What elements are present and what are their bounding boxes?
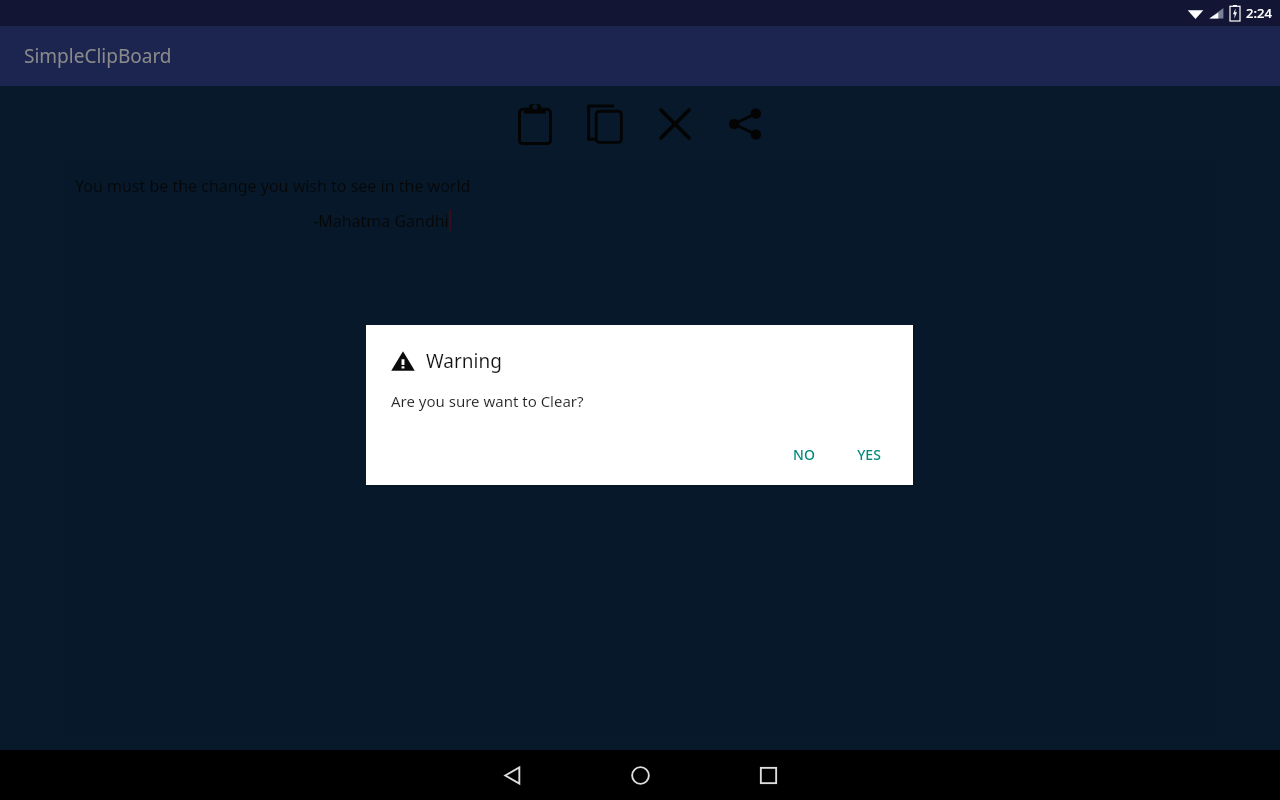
staticText: SimpleClipBoard — [24, 43, 172, 69]
button[interactable]: Copy — [581, 100, 629, 148]
button[interactable]: YES — [845, 438, 893, 471]
staticText: Warning — [426, 348, 502, 374]
button[interactable]: Recents — [728, 750, 808, 800]
button[interactable]: Back — [472, 750, 552, 800]
button[interactable]: Home — [600, 750, 680, 800]
button[interactable]: You must be the change you wish to see i… — [64, 161, 1216, 735]
staticText: -Mahatma Gandhi — [313, 210, 449, 232]
staticText: YES — [857, 445, 881, 464]
staticText: You must be the change you wish to see i… — [75, 175, 471, 197]
staticText: 2:24 — [1246, 4, 1272, 22]
button[interactable]: NO — [781, 438, 827, 471]
staticText: Are you sure want to Clear? — [391, 391, 584, 411]
button[interactable]: Paste — [511, 100, 559, 148]
button[interactable]: Clear — [651, 100, 699, 148]
staticText: NO — [793, 445, 815, 464]
button[interactable]: Share — [721, 100, 769, 148]
